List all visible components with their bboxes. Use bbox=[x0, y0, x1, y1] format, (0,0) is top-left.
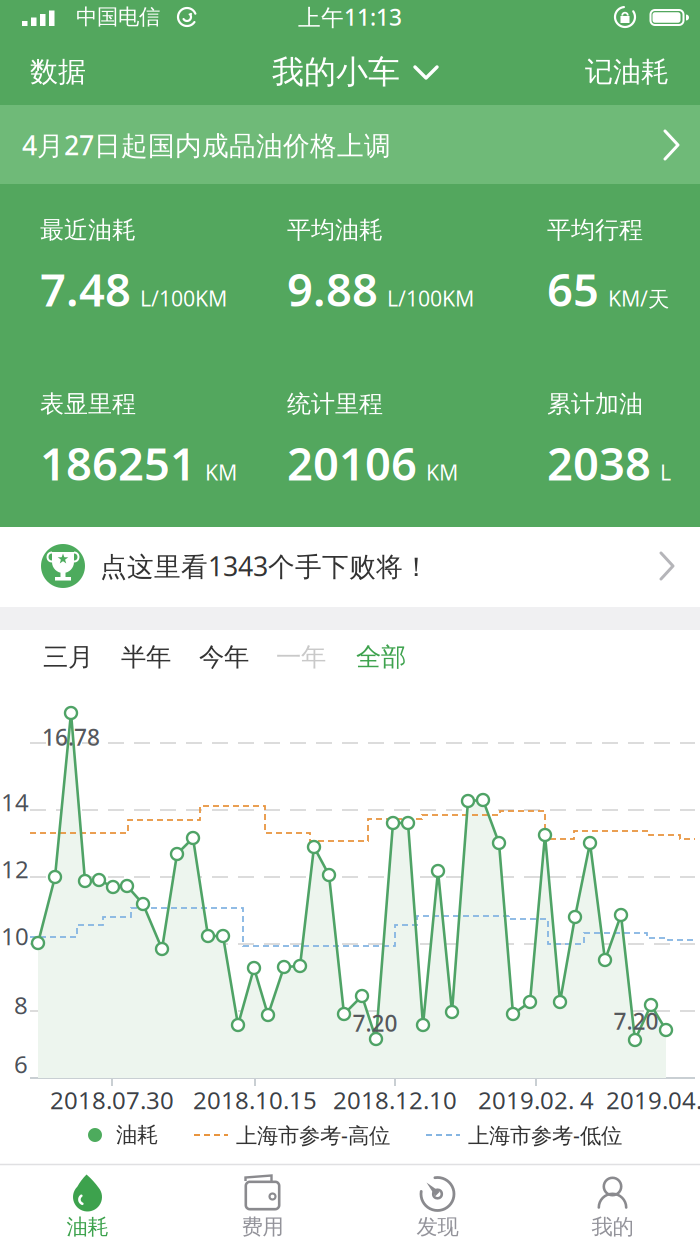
button[interactable]: 我的 bbox=[525, 1164, 700, 1244]
staticText: KM bbox=[426, 458, 458, 486]
staticText: 2019.04... bbox=[606, 1084, 700, 1116]
staticText: 6 bbox=[14, 1048, 28, 1080]
staticText: 平均行程 bbox=[547, 215, 643, 245]
button[interactable]: 三月 bbox=[30, 635, 106, 679]
staticText: 14 bbox=[1, 786, 29, 818]
staticText: 油耗 bbox=[116, 1122, 158, 1148]
staticText: 上午11:13 bbox=[298, 2, 402, 32]
button[interactable]: 今年 bbox=[186, 635, 262, 679]
staticText: 费用 bbox=[241, 1214, 283, 1240]
staticText: 今年 bbox=[199, 641, 249, 672]
staticText: 2018.10.15 bbox=[193, 1084, 317, 1116]
staticText: 发现 bbox=[416, 1214, 458, 1240]
staticText: 8 bbox=[14, 989, 28, 1021]
staticText: 16.78 bbox=[42, 722, 100, 752]
button[interactable]: 数据 bbox=[0, 47, 118, 97]
staticText: 2018.12.10 bbox=[333, 1084, 457, 1116]
staticText: KM/天 bbox=[608, 284, 669, 312]
button[interactable]: 我的小车 bbox=[272, 47, 440, 97]
staticText: 7.20 bbox=[613, 1006, 658, 1036]
staticText: 上海市参考-高位 bbox=[236, 1121, 390, 1149]
staticText: 186251 bbox=[40, 433, 196, 493]
staticText: L/100KM bbox=[387, 284, 474, 312]
staticText: KM bbox=[205, 458, 237, 486]
staticText: 中国电信 bbox=[76, 4, 160, 30]
button[interactable]: 记油耗 bbox=[562, 47, 692, 97]
button[interactable]: 半年 bbox=[108, 635, 184, 679]
staticText: 7.20 bbox=[352, 1008, 397, 1038]
staticText: 我的小车 bbox=[272, 52, 400, 92]
staticText: 2038 bbox=[547, 433, 651, 493]
staticText: 20106 bbox=[287, 433, 417, 493]
staticText: 65 bbox=[547, 259, 599, 319]
button[interactable]: 费用 bbox=[175, 1164, 350, 1244]
staticText: L bbox=[660, 458, 671, 486]
button[interactable]: 点这里看1343个手下败将！ bbox=[0, 527, 700, 607]
staticText: 我的 bbox=[591, 1214, 633, 1240]
staticText: 数据 bbox=[30, 55, 86, 89]
staticText: L/100KM bbox=[140, 284, 227, 312]
staticText: 上海市参考-低位 bbox=[468, 1121, 622, 1149]
staticText: 表显里程 bbox=[40, 389, 136, 419]
staticText: 4月27日起国内成品油价格上调 bbox=[22, 127, 391, 163]
staticText: 2019.02. 4 bbox=[478, 1084, 594, 1116]
staticText: 12 bbox=[1, 853, 29, 885]
staticText: 7.48 bbox=[40, 259, 131, 319]
button[interactable]: 发现 bbox=[350, 1164, 525, 1244]
staticText: 9.88 bbox=[287, 259, 378, 319]
staticText: 统计里程 bbox=[287, 389, 383, 419]
button[interactable]: 油耗 bbox=[0, 1164, 175, 1244]
staticText: 最近油耗 bbox=[40, 215, 136, 245]
staticText: 油耗 bbox=[66, 1214, 108, 1240]
staticText: 三月 bbox=[43, 641, 93, 672]
staticText: 记油耗 bbox=[585, 55, 669, 89]
staticText: 点这里看1343个手下败将！ bbox=[100, 548, 430, 584]
staticText: 2018.07.30 bbox=[50, 1084, 174, 1116]
button[interactable]: 4月27日起国内成品油价格上调 bbox=[0, 105, 700, 184]
staticText: 10 bbox=[1, 920, 29, 952]
button[interactable]: 一年 bbox=[263, 635, 339, 679]
button[interactable]: 全部 bbox=[343, 635, 419, 679]
staticText: 一年 bbox=[276, 641, 326, 672]
staticText: 平均油耗 bbox=[287, 215, 383, 245]
staticText: 半年 bbox=[121, 641, 171, 672]
staticText: 累计加油 bbox=[547, 389, 643, 419]
staticText: 全部 bbox=[356, 641, 406, 672]
